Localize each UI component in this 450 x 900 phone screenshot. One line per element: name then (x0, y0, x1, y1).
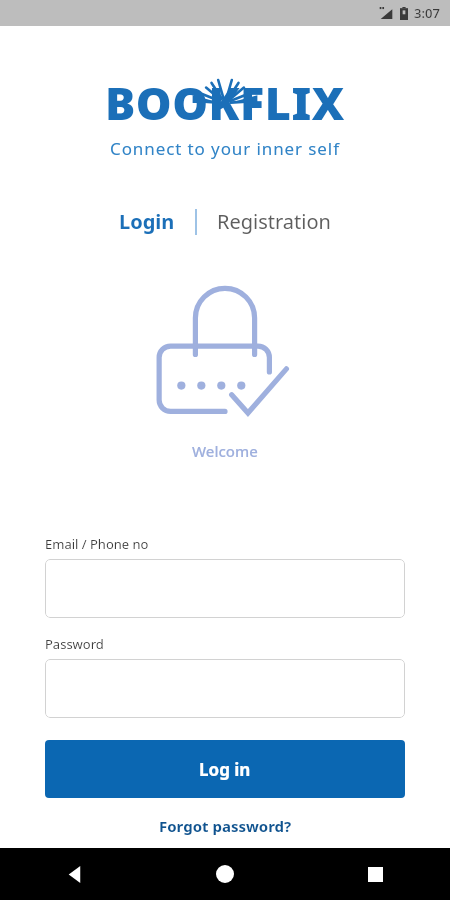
staticText: Password (45, 635, 104, 653)
button[interactable]: Log in (45, 740, 405, 798)
staticText: Log in (199, 758, 251, 781)
button[interactable]: Recent apps (300, 848, 450, 900)
staticText: Forgot password? (159, 816, 292, 836)
button[interactable] (45, 659, 405, 718)
other: Secure login illustration (151, 283, 299, 435)
staticText: Email / Phone no (45, 535, 149, 553)
button[interactable]: Registration (205, 202, 343, 241)
button[interactable]: Login (107, 202, 187, 241)
staticText: BOOKFLIX (105, 72, 345, 133)
button[interactable]: Back (0, 848, 150, 900)
button[interactable]: Home (150, 848, 300, 900)
staticText: Connect to your inner self (110, 137, 340, 160)
staticText: Welcome (192, 441, 258, 461)
staticText: 3:07 (414, 4, 440, 22)
staticText: Registration (217, 208, 331, 235)
button[interactable]: Forgot password? (149, 812, 302, 840)
staticText: Login (119, 208, 175, 235)
button[interactable] (45, 559, 405, 618)
